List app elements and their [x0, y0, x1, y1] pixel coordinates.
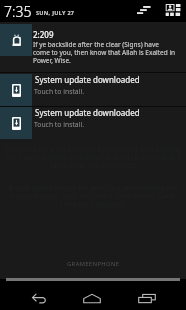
button[interactable]: Home [70, 282, 114, 310]
button[interactable]: System update downloaded [0, 107, 186, 139]
staticText: If ye backslide after the clear (Signs) … [33, 40, 177, 65]
button[interactable]: Back [16, 282, 60, 310]
staticText: SUN, JULY 27 [36, 9, 75, 16]
staticText: GRAMEENPHONE [67, 260, 120, 268]
staticText: 7:35 [4, 2, 32, 21]
staticText: 2:209 [33, 29, 54, 40]
button[interactable]: Recent apps [125, 282, 169, 310]
staticText: System update downloaded [35, 74, 140, 85]
button[interactable]: 2:209 [0, 24, 186, 72]
staticText: Touch to install. [34, 87, 84, 96]
staticText: System update downloaded [35, 107, 140, 118]
staticText: Touch to install. [34, 120, 84, 129]
button[interactable]: System update downloaded [0, 74, 186, 106]
